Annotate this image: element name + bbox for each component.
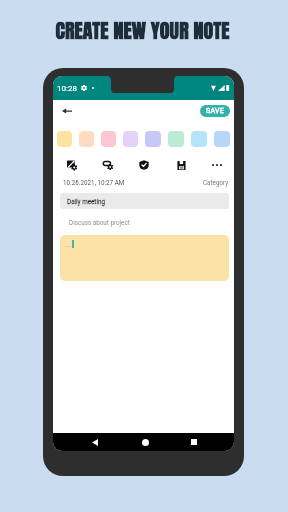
button[interactable]: Colour [79, 131, 94, 147]
button[interactable]: Colour [214, 131, 230, 147]
button[interactable]: Colour [101, 131, 116, 147]
button[interactable]: Add image [65, 158, 79, 172]
staticText: 10:28 [57, 84, 77, 93]
button[interactable]: Back [88, 435, 102, 449]
button[interactable]: Back [62, 106, 72, 116]
button[interactable]: Colour [145, 131, 161, 147]
button[interactable]: More [210, 158, 224, 172]
staticText: Discuss about project [69, 219, 130, 226]
button[interactable]: Recents [187, 435, 201, 449]
staticText: SAVE [206, 107, 225, 115]
button[interactable]: Colour [123, 131, 138, 147]
staticText: Daily meeting [67, 198, 105, 205]
staticText: CREATE NEW YOUR NOTE [55, 15, 230, 45]
button[interactable]: Home [138, 435, 152, 449]
staticText: ... [66, 241, 71, 248]
button[interactable]: Category [203, 179, 229, 186]
button[interactable]: Colour [168, 131, 184, 147]
button[interactable]: Daily meeting [60, 193, 229, 209]
button[interactable]: Colour [191, 131, 207, 147]
staticText: Category [203, 179, 229, 186]
button[interactable]: Link [101, 158, 115, 172]
button[interactable]: ... [60, 235, 229, 281]
button[interactable]: Lock [137, 158, 151, 172]
button[interactable]: Save note [174, 158, 188, 172]
button[interactable]: SAVE [200, 105, 230, 117]
button[interactable]: Colour [57, 131, 72, 147]
staticText: 10.26.2021, 10:27 AM [63, 179, 125, 186]
